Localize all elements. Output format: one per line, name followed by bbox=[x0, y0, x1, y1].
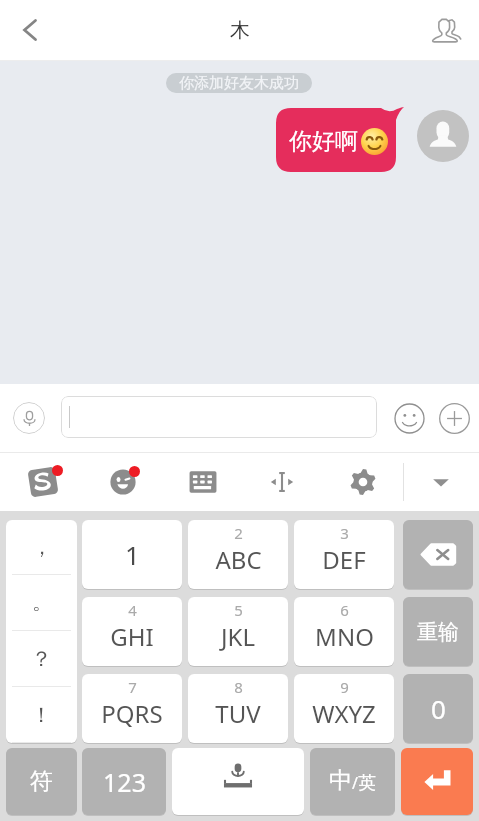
button[interactable]: ， bbox=[6, 520, 77, 574]
staticText: 符 bbox=[30, 767, 53, 796]
button[interactable]: Emoji bbox=[393, 402, 425, 434]
button[interactable]: Keyboard layout bbox=[179, 458, 227, 506]
staticText: ， bbox=[32, 535, 52, 560]
staticText: WXYZ bbox=[312, 697, 376, 730]
staticText: 你好啊 bbox=[289, 127, 358, 156]
button[interactable]: Enter bbox=[401, 748, 473, 815]
button[interactable]: 重输 bbox=[403, 597, 473, 666]
button[interactable]: 。 bbox=[6, 575, 77, 630]
staticText: PQRS bbox=[101, 697, 163, 730]
button[interactable]: ！ bbox=[6, 687, 77, 742]
staticText: 。 bbox=[32, 590, 52, 615]
button[interactable]: Back bbox=[6, 6, 54, 54]
staticText: 重输 bbox=[417, 619, 459, 645]
staticText: GHI bbox=[110, 620, 154, 653]
button[interactable]: 4 bbox=[82, 597, 182, 666]
button[interactable]: Backspace bbox=[403, 520, 473, 589]
button[interactable]: 8 bbox=[188, 674, 288, 743]
staticText: 8 bbox=[234, 677, 243, 697]
button[interactable]: 中 bbox=[310, 748, 395, 815]
button[interactable]: 7 bbox=[82, 674, 182, 743]
staticText: TUV bbox=[215, 697, 261, 730]
staticText: 你添加好友木成功 bbox=[179, 74, 299, 93]
staticText: ！ bbox=[31, 702, 52, 728]
button[interactable]: Voice input bbox=[13, 402, 45, 434]
staticText: JKL bbox=[221, 620, 255, 653]
button[interactable]: More bbox=[438, 402, 470, 434]
button[interactable]: 0 bbox=[403, 674, 473, 743]
staticText: MNO bbox=[315, 620, 374, 653]
staticText: 9 bbox=[340, 677, 349, 697]
button[interactable]: Contacts bbox=[422, 6, 470, 54]
staticText: 6 bbox=[340, 600, 349, 620]
button[interactable]: ？ bbox=[6, 631, 77, 686]
staticText: 7 bbox=[128, 677, 137, 697]
button[interactable]: Move cursor bbox=[258, 458, 306, 506]
staticText: 2 bbox=[234, 523, 243, 543]
staticText: 1 bbox=[125, 537, 140, 572]
button[interactable]: 6 bbox=[294, 597, 394, 666]
button[interactable]: Emoji panel bbox=[99, 458, 147, 506]
button[interactable]: Hide keyboard bbox=[417, 458, 465, 506]
button[interactable] bbox=[61, 396, 377, 438]
button[interactable]: 5 bbox=[188, 597, 288, 666]
staticText: 木 bbox=[230, 18, 250, 43]
staticText: 3 bbox=[340, 523, 349, 543]
staticText: ABC bbox=[215, 543, 262, 576]
button[interactable]: Voice input and space bbox=[172, 748, 304, 815]
button[interactable]: 9 bbox=[294, 674, 394, 743]
button[interactable]: 2 bbox=[188, 520, 288, 589]
button[interactable]: 123 bbox=[82, 748, 166, 815]
staticText: DEF bbox=[322, 543, 366, 576]
button[interactable]: 1 bbox=[82, 520, 182, 589]
staticText: 0 bbox=[431, 691, 446, 726]
staticText: 4 bbox=[128, 600, 137, 620]
staticText: 中 bbox=[329, 766, 352, 795]
button[interactable]: Sogou input bbox=[19, 458, 67, 506]
button[interactable]: Avatar bbox=[417, 110, 469, 162]
button[interactable]: 你好啊 bbox=[276, 108, 404, 172]
staticText: / bbox=[352, 772, 358, 794]
staticText: 5 bbox=[234, 600, 243, 620]
button[interactable]: Settings bbox=[339, 458, 387, 506]
staticText: 英 bbox=[358, 772, 376, 795]
button[interactable]: 3 bbox=[294, 520, 394, 589]
staticText: 123 bbox=[103, 765, 146, 799]
button[interactable]: 符 bbox=[6, 748, 77, 815]
staticText: ？ bbox=[31, 646, 52, 672]
